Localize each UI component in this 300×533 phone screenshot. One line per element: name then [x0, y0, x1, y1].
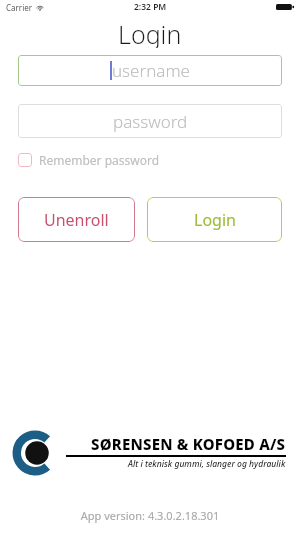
button[interactable]: Login: [147, 197, 282, 242]
button[interactable]: password: [18, 104, 282, 138]
staticText: password: [113, 110, 188, 133]
button[interactable]: username: [18, 55, 282, 86]
button[interactable]: Unenroll: [18, 197, 135, 242]
other: Sørensen & Kofoed logo: [12, 427, 62, 477]
staticText: Carrier: [6, 2, 33, 13]
staticText: Remember password: [39, 152, 160, 168]
staticText: Unenroll: [44, 209, 109, 231]
staticText: Login: [118, 17, 182, 48]
staticText: 2:32 PM: [134, 1, 167, 13]
staticText: username: [112, 59, 190, 82]
staticText: Login: [194, 209, 236, 231]
staticText: SØRENSEN & KOFOED A/S: [91, 434, 286, 454]
button[interactable]: Remember password: [18, 149, 160, 171]
staticText: Alt i teknisk gummi, slanger og hydrauli…: [128, 458, 286, 470]
staticText: App version: 4.3.0.2.18.301: [0, 508, 300, 523]
